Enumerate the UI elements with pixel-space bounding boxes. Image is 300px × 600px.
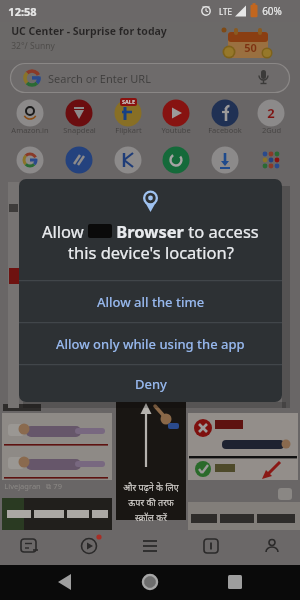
button[interactable] (8, 146, 52, 176)
button[interactable] (106, 146, 150, 176)
staticText: और पढ़ने के लिए (123, 481, 179, 493)
button[interactable] (10, 63, 290, 93)
button[interactable] (249, 146, 293, 176)
staticText: Livejagran (4, 481, 41, 491)
staticText: Flipkart (115, 125, 142, 135)
staticText: Snapdeal (63, 125, 96, 135)
button[interactable] (154, 99, 198, 139)
button[interactable]: Deny (19, 365, 282, 402)
button[interactable] (154, 146, 198, 176)
staticText: to access (184, 220, 259, 242)
button[interactable] (252, 532, 292, 563)
button[interactable] (57, 99, 101, 139)
staticText: 32°/ Sunny (11, 40, 55, 52)
button[interactable] (129, 567, 171, 598)
staticText: 2Gud (262, 125, 281, 135)
staticText: Facebook (208, 125, 242, 135)
staticText: स्क्रॉल करें (135, 511, 167, 523)
button[interactable] (214, 567, 256, 598)
staticText: 12:58 (8, 4, 37, 19)
staticText: Allow all the time (97, 293, 205, 311)
staticText: Search or Enter URL (48, 71, 151, 86)
staticText: ऊपर की तरफ (128, 496, 174, 508)
staticText: 60% (262, 4, 282, 18)
staticText: LTE (219, 6, 232, 17)
staticText: Deny (135, 375, 167, 393)
button[interactable] (57, 146, 101, 176)
button[interactable] (8, 99, 52, 139)
button[interactable] (191, 532, 231, 563)
staticText: Browser (112, 220, 184, 242)
staticText: Allow only while using the app (56, 335, 245, 353)
button[interactable]: Allow all the time (19, 281, 282, 322)
staticText: 50 (244, 40, 257, 55)
staticText: ⧉ 79 (46, 481, 62, 491)
button[interactable] (203, 146, 247, 176)
button[interactable] (249, 99, 293, 139)
staticText: UC Center - Surprise for today (11, 24, 167, 38)
staticText: Amazon.in (11, 125, 49, 135)
staticText: Youtube (161, 125, 191, 135)
staticText: Allow (42, 220, 88, 242)
button[interactable] (106, 99, 150, 139)
button[interactable] (45, 567, 87, 598)
button[interactable] (8, 532, 48, 563)
button[interactable] (203, 99, 247, 139)
staticText: 2 (267, 104, 275, 122)
staticText: SALE (122, 98, 135, 105)
button[interactable] (69, 532, 109, 563)
staticText: this device's location? (68, 241, 234, 263)
button[interactable] (130, 532, 170, 563)
button[interactable]: Allow only while using the app (19, 323, 282, 364)
